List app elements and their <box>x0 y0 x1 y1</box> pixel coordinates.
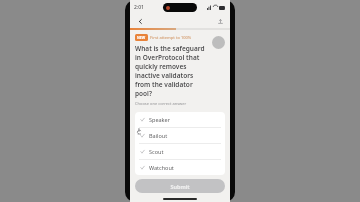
staticText: Watchout <box>149 164 174 171</box>
button[interactable]: Share <box>215 16 225 26</box>
staticText: Scout <box>149 148 164 155</box>
staticText: Bailout <box>149 132 168 139</box>
button[interactable]: Scout <box>135 144 225 159</box>
button[interactable]: Profile <box>212 36 225 49</box>
button[interactable]: Back <box>135 16 145 26</box>
staticText: 2:01 <box>134 4 144 11</box>
staticText: Choose one correct answer <box>135 101 187 106</box>
staticText: Speaker <box>149 116 170 123</box>
staticText: What is the safeguard in OverProtocol th… <box>135 44 209 98</box>
button[interactable]: Watchout <box>135 160 225 175</box>
button[interactable]: Bailout <box>135 128 225 143</box>
staticText: First attempt to 100% <box>150 35 192 40</box>
staticText: Submit <box>170 183 190 190</box>
button[interactable]: Speaker <box>135 112 225 127</box>
button[interactable]: Submit <box>135 179 225 193</box>
staticText: NEW <box>137 35 146 40</box>
